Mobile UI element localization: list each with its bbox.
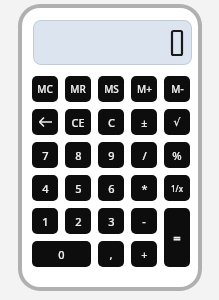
staticText: 7 (42, 148, 49, 163)
staticText: 5 (75, 181, 82, 196)
staticText: M+ (137, 82, 152, 96)
staticText: % (172, 148, 182, 163)
staticText: M- (171, 82, 184, 96)
staticText: - (142, 214, 146, 229)
staticText: 9 (108, 148, 115, 163)
staticText: 8 (75, 148, 82, 163)
staticText: 1/x (171, 183, 183, 194)
staticText: MS (104, 82, 119, 96)
staticText: MR (70, 82, 86, 96)
staticText: * (141, 181, 148, 196)
staticText: ± (141, 115, 148, 130)
staticText: 1 (42, 214, 49, 229)
button[interactable]: 8 (65, 142, 91, 168)
button[interactable]: 1/x (164, 175, 190, 201)
button[interactable]: = (164, 208, 190, 267)
button[interactable]: 0 (32, 241, 91, 267)
staticText: √ (173, 116, 181, 129)
button[interactable]: √ (164, 109, 190, 135)
button[interactable]: CE (65, 109, 91, 135)
button[interactable]: 2 (65, 208, 91, 234)
staticText: C (108, 115, 115, 130)
button[interactable]: 5 (65, 175, 91, 201)
staticText: 0 (58, 247, 65, 262)
button[interactable]: + (131, 241, 157, 267)
button[interactable]: MR (65, 76, 91, 102)
staticText: 2 (75, 214, 82, 229)
staticText: 4 (42, 181, 49, 196)
button[interactable]: 1 (32, 208, 58, 234)
button[interactable]: , (98, 241, 124, 267)
staticText: 3 (108, 214, 115, 229)
button[interactable]: * (131, 175, 157, 201)
button[interactable]: % (164, 142, 190, 168)
button[interactable]: M- (164, 76, 190, 102)
button[interactable]: ± (131, 109, 157, 135)
staticText: = (173, 229, 181, 247)
button[interactable]: - (131, 208, 157, 234)
staticText: CE (71, 115, 85, 130)
staticText: + (141, 247, 148, 262)
button[interactable]: 3 (98, 208, 124, 234)
button[interactable]: M+ (131, 76, 157, 102)
button[interactable]: / (131, 142, 157, 168)
staticText: 6 (108, 181, 115, 196)
button[interactable]: 7 (32, 142, 58, 168)
button[interactable]: 9 (98, 142, 124, 168)
button[interactable]: C (98, 109, 124, 135)
staticText: / (142, 148, 147, 163)
button[interactable]: Backspace (32, 109, 58, 135)
staticText: MC (37, 82, 53, 96)
button[interactable]: 6 (98, 175, 124, 201)
button[interactable]: MC (32, 76, 58, 102)
button[interactable]: MS (98, 76, 124, 102)
button[interactable]: 4 (32, 175, 58, 201)
staticText: , (109, 247, 113, 262)
